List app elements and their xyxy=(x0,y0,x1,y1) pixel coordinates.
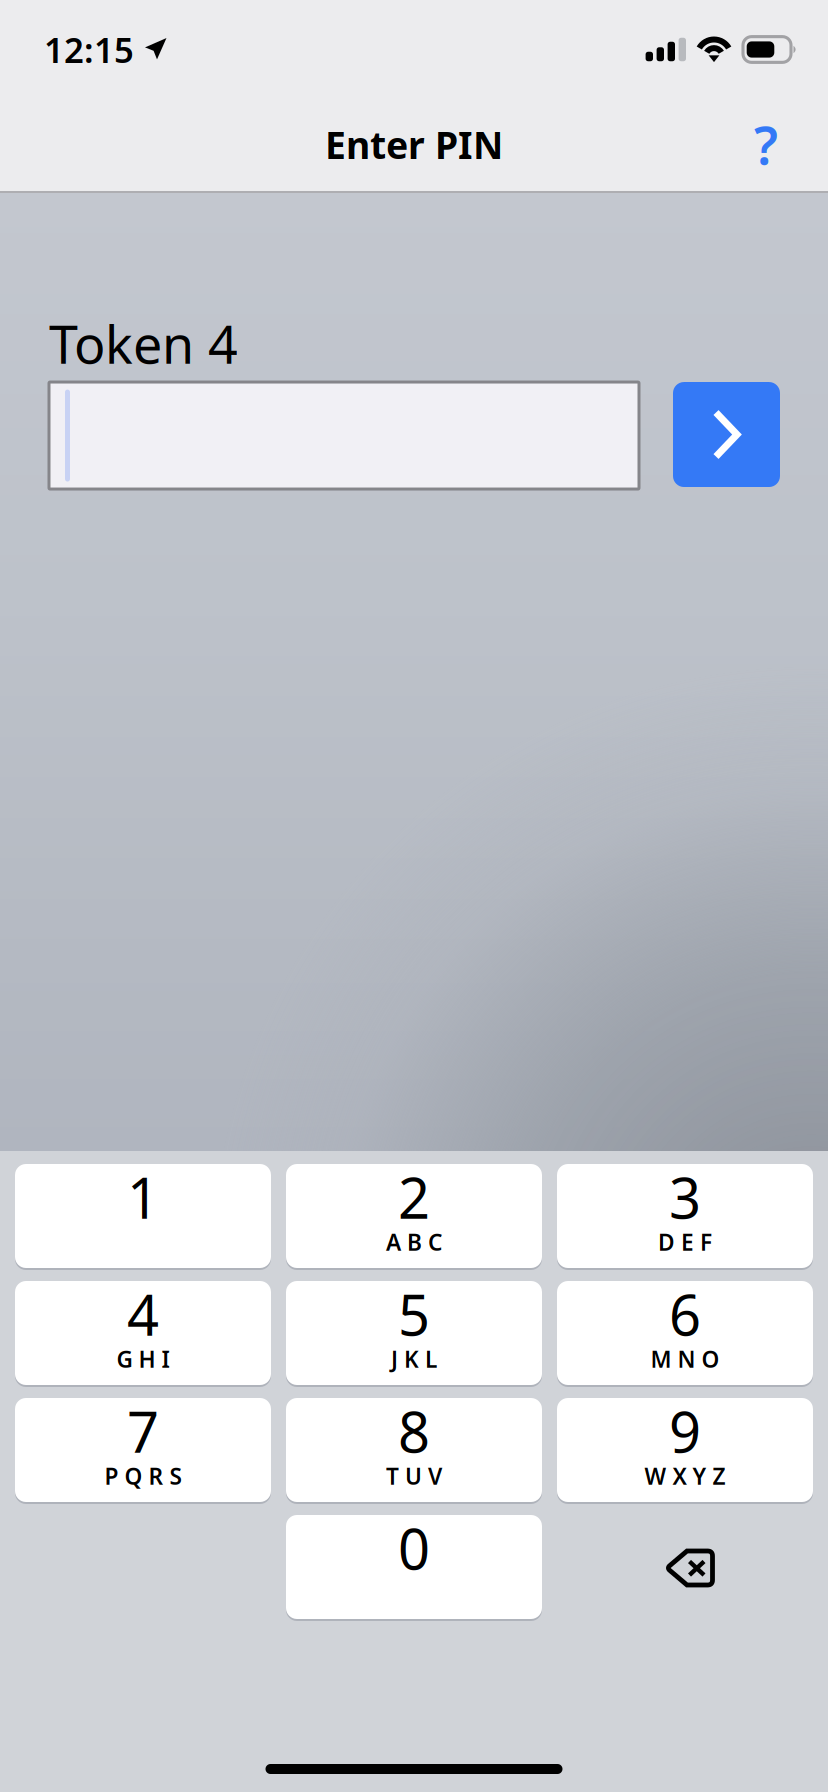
staticText: 6 xyxy=(669,1277,701,1351)
button[interactable]: Delete xyxy=(557,1516,813,1620)
staticText: 0 xyxy=(398,1511,430,1585)
staticText: 5 xyxy=(398,1277,430,1351)
button[interactable]: 0 xyxy=(286,1515,542,1621)
button[interactable]: 4 xyxy=(15,1281,271,1387)
staticText: 4 xyxy=(127,1277,159,1351)
staticText: 1 xyxy=(127,1160,159,1234)
staticText: T U V xyxy=(386,1461,442,1491)
staticText: 7 xyxy=(127,1394,159,1468)
button[interactable]: Help xyxy=(730,103,802,185)
button[interactable]: 9 xyxy=(557,1398,813,1504)
staticText: J K L xyxy=(391,1344,437,1374)
staticText: 8 xyxy=(398,1394,430,1468)
staticText: W X Y Z xyxy=(644,1461,725,1491)
staticText: P Q R S xyxy=(104,1461,181,1491)
staticText: G H I xyxy=(116,1344,169,1374)
button[interactable]: 5 xyxy=(286,1281,542,1387)
staticText: D E F xyxy=(658,1227,712,1257)
button[interactable]: 3 xyxy=(557,1164,813,1270)
button[interactable]: 2 xyxy=(286,1164,542,1270)
staticText: Enter PIN xyxy=(325,120,503,169)
staticText: 3 xyxy=(669,1160,701,1234)
staticText: M N O xyxy=(650,1344,719,1374)
staticText: 9 xyxy=(669,1394,701,1468)
button[interactable]: 6 xyxy=(557,1281,813,1387)
button[interactable]: 1 xyxy=(15,1164,271,1270)
staticText: A B C xyxy=(386,1227,442,1257)
staticText: Token 4 xyxy=(49,309,238,378)
staticText: 12:15 xyxy=(44,26,134,72)
staticText: 2 xyxy=(398,1160,430,1234)
button[interactable]: 7 xyxy=(15,1398,271,1504)
button[interactable]: 8 xyxy=(286,1398,542,1504)
staticText: ? xyxy=(754,110,778,179)
button[interactable]: Submit PIN xyxy=(673,382,780,487)
